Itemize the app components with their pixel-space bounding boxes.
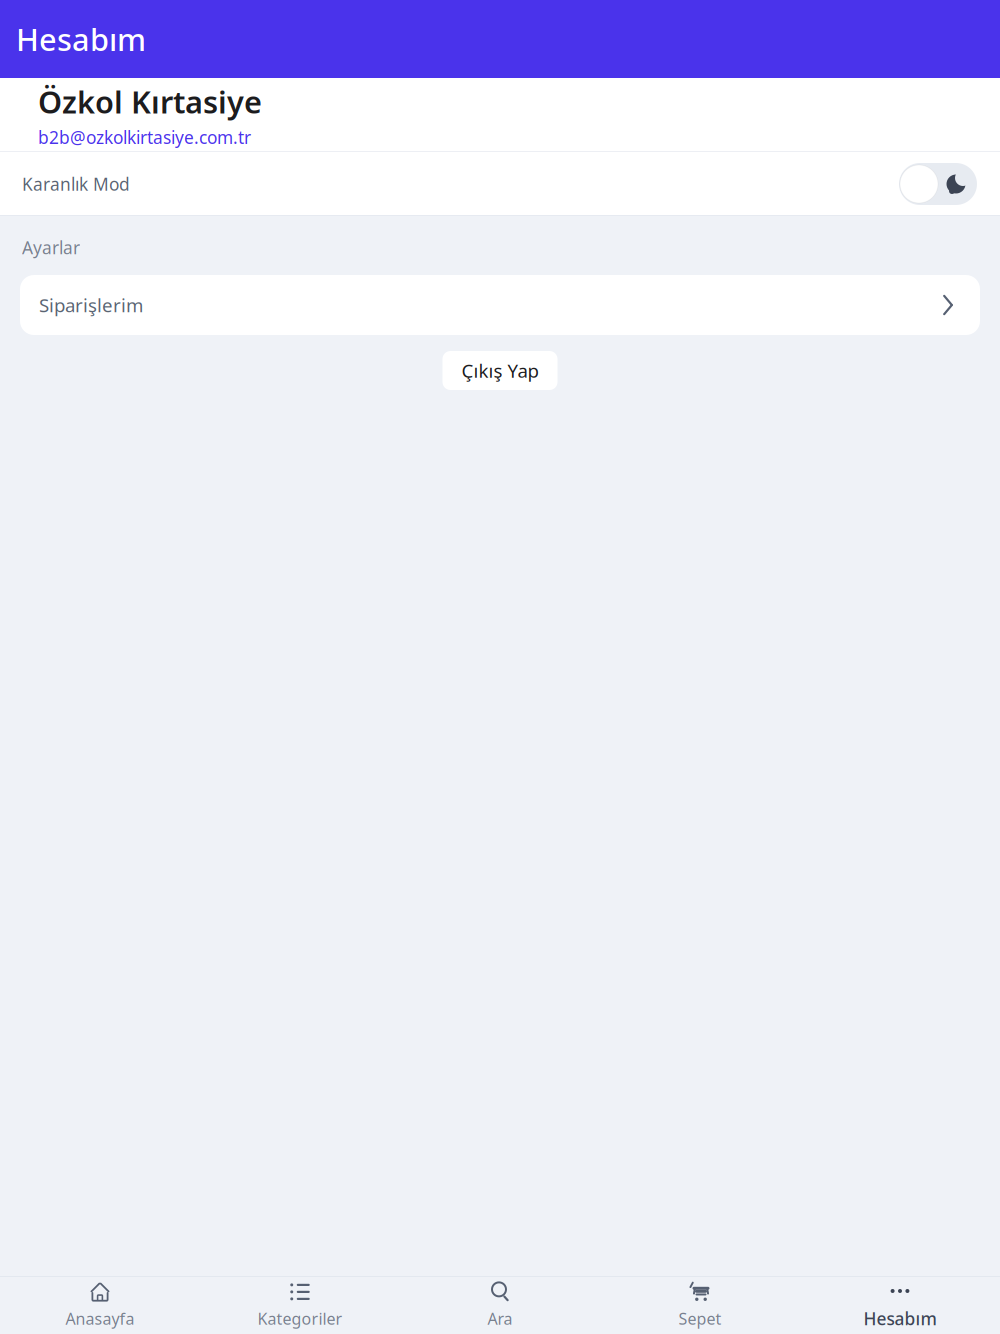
button[interactable]: Kategoriler	[200, 1276, 400, 1333]
button[interactable]: Hesabım	[800, 1276, 1000, 1333]
staticText: Ara	[487, 1308, 512, 1329]
staticText: Anasayfa	[65, 1308, 134, 1329]
button[interactable]: Karanlık Mod	[899, 163, 977, 205]
staticText: Hesabım	[16, 19, 146, 59]
staticText: Çıkış Yap	[461, 358, 538, 383]
staticText: b2b@ozkolkirtasiye.com.tr	[38, 126, 251, 149]
button[interactable]: Siparişlerim	[20, 275, 980, 335]
button[interactable]: Anasayfa	[0, 1276, 200, 1333]
staticText: Sepet	[678, 1308, 721, 1329]
staticText: Siparişlerim	[39, 293, 143, 317]
staticText: Özkol Kırtasiye	[38, 81, 262, 122]
staticText: Ayarlar	[22, 236, 80, 259]
button[interactable]: Ara	[400, 1276, 600, 1333]
staticText: Kategoriler	[257, 1308, 342, 1329]
staticText: Hesabım	[863, 1307, 936, 1330]
button[interactable]: Sepet	[600, 1276, 800, 1333]
button[interactable]: Çıkış Yap	[442, 351, 557, 390]
staticText: Karanlık Mod	[22, 172, 130, 195]
